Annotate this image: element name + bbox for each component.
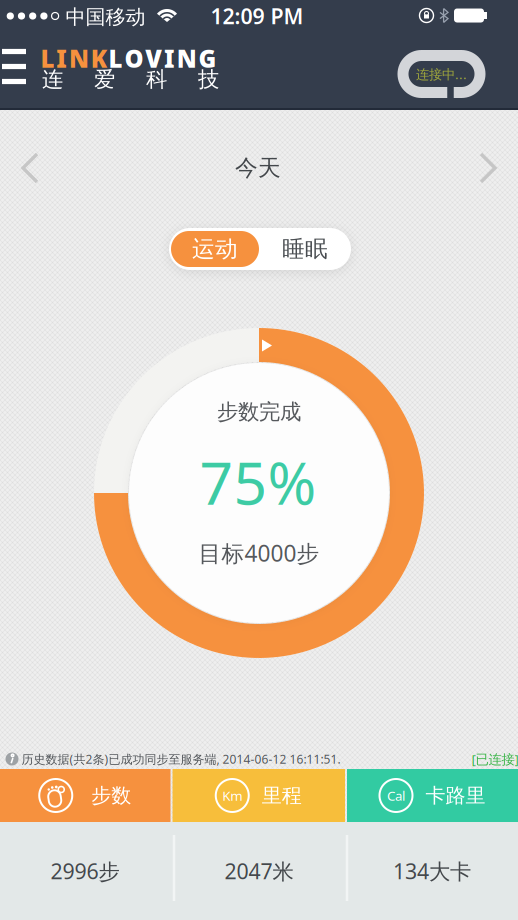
staticText: Cal (387, 787, 405, 804)
staticText: 134大卡 (393, 857, 471, 885)
staticText: L (109, 43, 123, 74)
staticText: 里程 (262, 783, 302, 808)
staticText: 12:09 PM (210, 2, 303, 30)
staticText: K (91, 43, 107, 74)
staticText: 技 (198, 66, 219, 93)
staticText: L (40, 43, 54, 74)
staticText: 75% (199, 443, 316, 521)
staticText: 睡眠 (282, 235, 328, 263)
staticText: N (177, 43, 197, 74)
staticText: V (145, 43, 162, 74)
staticText: 卡路里 (425, 783, 485, 808)
button[interactable]: Next day (481, 154, 497, 182)
button[interactable]: 睡眠 (265, 228, 345, 270)
button[interactable]: Menu (0, 45, 28, 87)
staticText: 今天 (235, 154, 281, 182)
staticText: 连 (42, 66, 63, 93)
button[interactable]: Previous day (21, 154, 37, 182)
button[interactable]: Cal (347, 769, 518, 822)
staticText: Km (222, 787, 242, 804)
staticText: 爱 (94, 66, 115, 93)
staticText: 目标4000步 (198, 538, 319, 568)
staticText: 科 (146, 66, 167, 93)
staticText: O (124, 43, 143, 74)
button[interactable]: 运动 (171, 231, 259, 267)
staticText: 中国移动 (65, 5, 145, 29)
button[interactable]: Km (172, 769, 345, 822)
staticText: 历史数据(共2条)已成功同步至服务端, 2014-06-12 16:11:51. (21, 751, 340, 767)
staticText: 运动 (192, 235, 238, 263)
staticText: 2047米 (224, 857, 293, 885)
staticText: N (69, 43, 89, 74)
staticText: [已连接] (471, 750, 518, 768)
staticText: 步数完成 (217, 399, 301, 425)
staticText: 2996步 (50, 857, 119, 885)
staticText: I (164, 43, 175, 74)
button[interactable]: Device connecting (395, 48, 487, 100)
staticText: I (56, 43, 67, 74)
staticText: 步数 (91, 783, 131, 808)
button[interactable]: 步数 (0, 769, 170, 822)
staticText: G (199, 43, 217, 74)
staticText: 连接中... (416, 65, 467, 83)
